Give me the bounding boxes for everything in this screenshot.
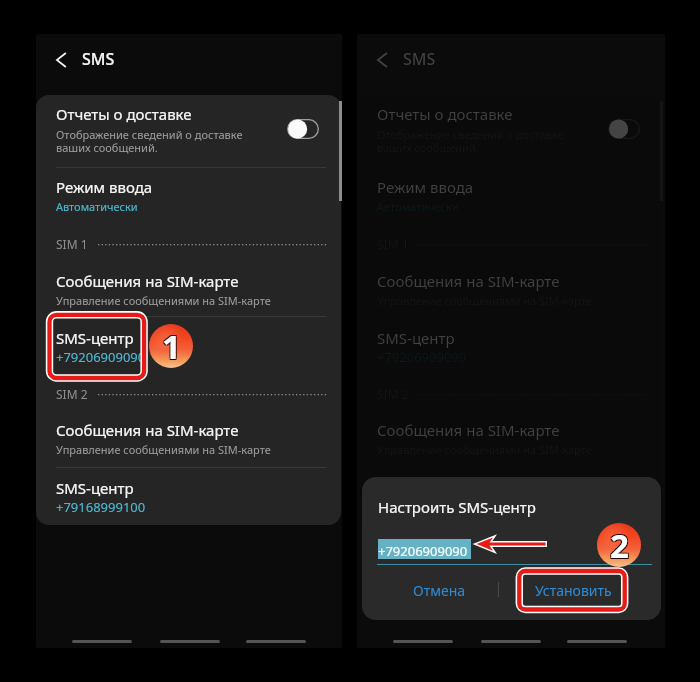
staticText: SIM 1 [56,236,88,252]
button[interactable]: Режим ввода [357,173,662,221]
staticText: +79206909090 [378,542,468,560]
button[interactable]: SMS-центр [36,474,341,524]
button[interactable]: Back [43,41,81,79]
staticText: Управление сообщениями на SIM-карте [56,442,271,457]
staticText: SMS [82,48,115,70]
button[interactable]: SMS-центр [357,324,662,374]
staticText: Управление сообщениями на SIM-карте [56,293,271,308]
staticText: Установить [535,581,612,600]
button[interactable]: Сообщения на SIM-карте [357,416,662,474]
staticText: 1 [161,323,180,367]
staticText: 2 [609,522,628,566]
staticText: Сообщения на SIM-карте [377,420,560,440]
button[interactable]: Отчеты о доставке [36,95,341,166]
button[interactable]: Back [567,640,627,643]
staticText: Настроить SMS-центр [378,497,536,517]
staticText: SMS-центр [377,328,455,348]
button[interactable]: Home [481,640,541,643]
staticText: 1 [161,325,180,369]
button[interactable]: Сообщения на SIM-карте [36,267,341,325]
button[interactable]: SMS-центр [36,324,341,374]
staticText: +79206909090 [377,348,467,366]
button[interactable]: Recents [72,640,132,643]
staticText: Отображение сведений о доставке [56,127,243,142]
button[interactable]: Recents [393,640,453,643]
staticText: ваших сообщений. [56,140,158,155]
button[interactable]: Back [364,41,402,79]
staticText: 2 [611,524,630,568]
staticText: 2 [611,522,630,566]
staticText: Отчеты о доставке [56,104,192,124]
staticText: Сообщения на SIM-карте [56,420,239,440]
button[interactable]: Home [160,640,220,643]
staticText: 1 [163,323,182,367]
button[interactable]: Сообщения на SIM-карте [36,416,341,474]
staticText: Сообщения на SIM-карте [56,271,239,291]
staticText: SMS-центр [56,328,134,348]
button[interactable]: Режим ввода [36,173,341,221]
staticText: Отмена [413,581,466,600]
staticText: 1 [163,325,182,369]
staticText: 2 [610,523,629,567]
button[interactable]: SMS-центр [357,474,662,524]
staticText: +79168999100 [56,498,146,516]
staticText: SMS [403,48,436,70]
staticText: Автоматически [56,199,138,214]
button[interactable]: Установить [518,577,628,603]
staticText: SMS-центр [56,478,134,498]
button[interactable]: Отчеты о доставке [357,95,662,166]
staticText: Режим ввода [377,177,474,197]
staticText: 2 [609,524,628,568]
staticText: SIM 2 [56,386,88,402]
button[interactable]: Сообщения на SIM-карте [357,267,662,325]
staticText: 1 [162,324,181,368]
staticText: Режим ввода [56,177,153,197]
staticText: +79206909090 [56,348,146,366]
staticText: Автоматически [377,199,459,214]
staticText: Отчеты о доставке [377,104,513,124]
button[interactable]: Back [246,640,306,643]
staticText: Сообщения на SIM-карте [377,271,560,291]
staticText: +79168999100 [377,498,467,516]
button[interactable]: Отмена [404,577,474,603]
